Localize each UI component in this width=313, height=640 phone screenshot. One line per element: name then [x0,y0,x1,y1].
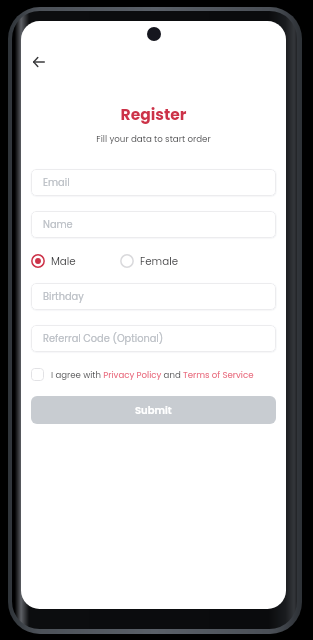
staticText: Submit [135,403,172,417]
button[interactable]: Name [31,211,276,238]
button[interactable]: Birthday [31,283,276,310]
button[interactable]: Female [120,254,179,268]
staticText: I agree with Privacy Policy and Terms of… [51,369,254,381]
staticText: Referral Code (Optional) [43,332,164,346]
button[interactable]: Male [31,254,76,268]
staticText: Fill your data to start order [21,133,286,145]
staticText: Birthday [43,290,84,304]
staticText: Register [21,104,286,126]
staticText: Email [43,176,70,190]
button[interactable]: Submit [31,396,276,424]
staticText: Male [51,254,76,268]
button[interactable]: Back [25,48,53,76]
button[interactable]: Referral Code (Optional) [31,325,276,352]
button[interactable]: Email [31,169,276,196]
staticText: Name [43,218,73,232]
button[interactable]: I agree with Privacy Policy and Terms of… [31,368,254,381]
staticText: Female [140,254,179,268]
